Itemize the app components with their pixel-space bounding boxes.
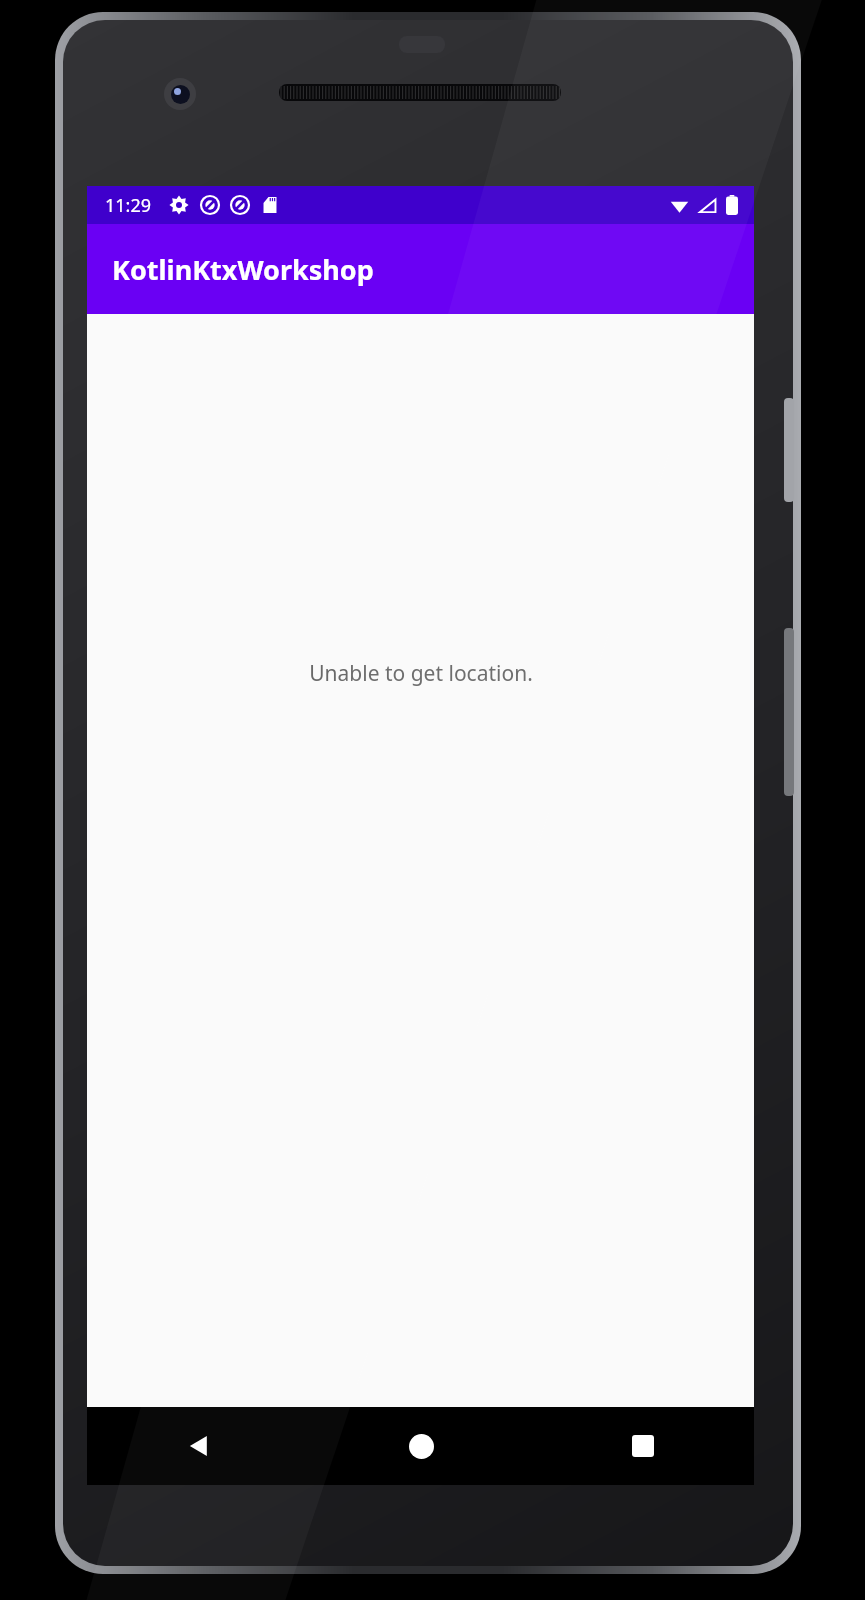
staticText: 11:29 [105,193,152,218]
staticText: Unable to get location. [309,659,533,688]
button[interactable]: Home [310,1407,532,1485]
button[interactable]: Recent apps [532,1407,754,1485]
button[interactable]: Back [87,1407,310,1485]
staticText: KotlinKtxWorkshop [112,251,374,288]
